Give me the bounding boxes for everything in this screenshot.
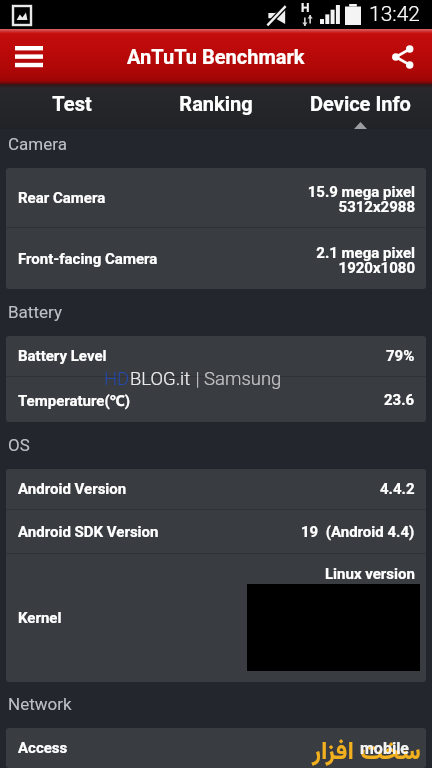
staticText: 4.4.2 (380, 480, 415, 498)
staticText: Device Info (310, 92, 411, 115)
button[interactable]: Share (374, 29, 432, 84)
button[interactable]: Front-facing Camera (6, 228, 426, 289)
staticText: Rear Camera (18, 189, 106, 207)
staticText: Ranking (179, 92, 253, 115)
staticText: H (301, 1, 310, 15)
staticText: Camera (8, 134, 67, 154)
staticText: 23.6 (384, 391, 415, 409)
staticText: | Samsung (191, 368, 282, 390)
staticText: Battery Level (18, 347, 107, 365)
staticText: Kernel (18, 609, 62, 627)
staticText: HD (104, 368, 130, 390)
staticText: Android Version (18, 480, 127, 498)
button[interactable]: Rear Camera (6, 168, 426, 227)
staticText: Front-facing Camera (18, 250, 158, 268)
staticText: BLOG.it (130, 368, 191, 390)
button[interactable]: Access (6, 728, 426, 768)
staticText: 13:42 (369, 2, 421, 27)
staticText: Network (8, 694, 72, 714)
button[interactable]: Kernel (6, 554, 426, 682)
button[interactable]: Ranking (144, 84, 288, 129)
staticText: سخت افزار (312, 733, 421, 768)
staticText: Linux version (325, 565, 415, 583)
staticText: 2.1 mega pixel 1920x1080 (316, 244, 415, 277)
button[interactable]: Test (0, 84, 144, 129)
button[interactable]: Battery Level (6, 336, 426, 376)
button[interactable]: Android Version (6, 469, 426, 509)
staticText: 15.9 mega pixel 5312x2988 (307, 183, 415, 216)
staticText: 19 (Android 4.4) (301, 523, 415, 541)
staticText: mobile (360, 739, 409, 758)
staticText: 79% (386, 347, 415, 365)
staticText: Access (18, 739, 68, 757)
button[interactable]: Open navigation menu (0, 29, 58, 84)
staticText: Battery (8, 302, 62, 322)
staticText: AnTuTu Benchmark (127, 45, 305, 68)
staticText: Test (52, 92, 92, 115)
button[interactable]: Temperature(℃) (6, 377, 426, 422)
staticText: Android SDK Version (18, 523, 159, 541)
staticText: Temperature(℃) (18, 390, 131, 410)
button[interactable]: Android SDK Version (6, 510, 426, 553)
button[interactable]: Device Info (288, 84, 432, 129)
staticText: OS (8, 435, 30, 455)
